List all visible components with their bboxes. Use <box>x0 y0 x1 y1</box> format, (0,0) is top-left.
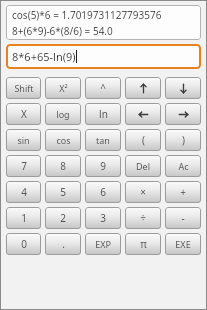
staticText: 8+(6*9)-6*(8/6) = 54.0 <box>12 24 113 38</box>
button[interactable]: 8 <box>45 155 81 177</box>
staticText: × <box>140 185 146 199</box>
staticText: ^ <box>100 81 106 95</box>
staticText: EXP <box>95 238 111 250</box>
staticText: 7 <box>21 159 27 173</box>
button[interactable]: cos <box>45 129 81 151</box>
button[interactable]: Shift <box>6 77 41 99</box>
button[interactable]: π <box>125 233 161 255</box>
button[interactable]: 2 <box>45 207 81 229</box>
staticText: 4 <box>21 185 27 199</box>
button[interactable]: 0 <box>6 233 41 255</box>
button[interactable]: 7 <box>6 155 41 177</box>
staticText: cos <box>56 134 71 146</box>
staticText: 3 <box>100 211 106 225</box>
staticText: - <box>181 211 185 225</box>
staticText: tan <box>96 134 110 146</box>
button[interactable]: Left <box>125 103 161 125</box>
staticText: . <box>62 237 65 251</box>
button[interactable]: EXE <box>165 233 201 255</box>
staticText: cos(5)*6 = 1.7019731127793576 <box>12 8 162 22</box>
button[interactable]: tan <box>85 129 121 151</box>
staticText: ÷ <box>140 211 146 225</box>
button[interactable]: X² <box>45 77 81 99</box>
button[interactable]: log <box>45 103 81 125</box>
staticText: EXE <box>175 238 191 250</box>
staticText: 6 <box>100 185 106 199</box>
button[interactable]: 6 <box>85 181 121 203</box>
button[interactable]: 1 <box>6 207 41 229</box>
button[interactable]: × <box>125 181 161 203</box>
button[interactable]: ÷ <box>125 207 161 229</box>
button[interactable]: ( <box>125 129 161 151</box>
button[interactable]: ^ <box>85 77 121 99</box>
staticText: ) <box>182 133 185 147</box>
staticText: 2 <box>60 211 66 225</box>
button[interactable]: Ac <box>165 155 201 177</box>
staticText: 8*6+65-ln(9) <box>12 49 76 64</box>
button[interactable]: 3 <box>85 207 121 229</box>
staticText: Ac <box>178 160 189 172</box>
staticText: ( <box>142 133 145 147</box>
button[interactable]: Up <box>125 77 161 99</box>
button[interactable]: 9 <box>85 155 121 177</box>
staticText: Del <box>136 160 150 172</box>
staticText: π <box>140 237 147 251</box>
button[interactable]: Down <box>165 77 201 99</box>
staticText: ln <box>99 107 108 121</box>
button[interactable]: - <box>165 207 201 229</box>
button[interactable]: . <box>45 233 81 255</box>
staticText: 5 <box>60 185 66 199</box>
button[interactable]: ln <box>85 103 121 125</box>
staticText: 9 <box>100 159 106 173</box>
button[interactable]: + <box>165 181 201 203</box>
button[interactable]: X <box>6 103 41 125</box>
staticText: log <box>56 108 70 120</box>
staticText: Shift <box>14 82 34 94</box>
button[interactable]: 5 <box>45 181 81 203</box>
button[interactable]: 8*6+65-ln(9) <box>6 44 201 69</box>
button[interactable]: cos(5)*6 = 1.7019731127793576 <box>6 5 201 40</box>
button[interactable]: Del <box>125 155 161 177</box>
staticText: 0 <box>21 237 27 251</box>
staticText: X <box>21 107 27 121</box>
button[interactable]: ) <box>165 129 201 151</box>
button[interactable]: sin <box>6 129 41 151</box>
button[interactable]: 4 <box>6 181 41 203</box>
staticText: + <box>180 185 186 199</box>
staticText: 8 <box>60 159 66 173</box>
staticText: sin <box>17 134 30 146</box>
staticText: X² <box>59 82 68 94</box>
button[interactable]: Right <box>165 103 201 125</box>
staticText: 1 <box>21 211 27 225</box>
button[interactable]: EXP <box>85 233 121 255</box>
